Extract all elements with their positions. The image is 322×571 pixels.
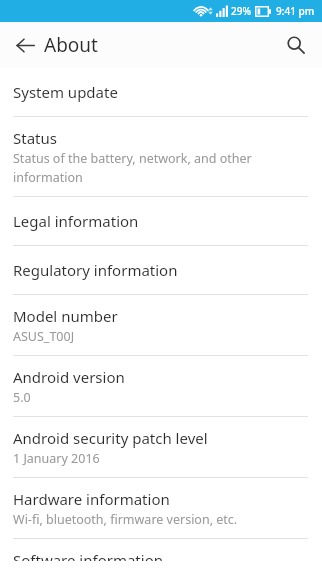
staticText: About bbox=[44, 32, 98, 58]
button[interactable]: Android version bbox=[0, 356, 322, 416]
staticText: Android security patch level bbox=[13, 428, 208, 448]
button[interactable]: Android security patch level bbox=[0, 417, 322, 477]
button[interactable]: Software information bbox=[0, 539, 322, 571]
staticText: 9:41 pm bbox=[276, 4, 315, 18]
staticText: Model number bbox=[13, 306, 118, 326]
button[interactable]: System update bbox=[0, 68, 322, 116]
staticText: Hardware information bbox=[13, 489, 170, 509]
button[interactable]: Hardware information bbox=[0, 478, 322, 538]
staticText: Status bbox=[13, 128, 57, 148]
staticText: Wi-fi, bluetooth, firmware version, etc. bbox=[13, 511, 238, 528]
button[interactable]: Search bbox=[278, 27, 314, 63]
staticText: Regulatory information bbox=[13, 260, 178, 280]
button[interactable]: Status bbox=[0, 117, 322, 196]
staticText: 1 January 2016 bbox=[13, 450, 100, 467]
staticText: Legal information bbox=[13, 211, 139, 231]
button[interactable]: Legal information bbox=[0, 197, 322, 245]
staticText: 29% bbox=[231, 4, 251, 18]
staticText: 5.0 bbox=[13, 389, 31, 406]
staticText: System update bbox=[13, 82, 118, 102]
staticText: information bbox=[13, 169, 83, 186]
button[interactable]: Regulatory information bbox=[0, 246, 322, 294]
button[interactable]: Back bbox=[8, 28, 42, 62]
staticText: Android version bbox=[13, 367, 125, 387]
staticText: Software information bbox=[13, 550, 163, 561]
staticText: ASUS_T00J bbox=[13, 328, 75, 345]
button[interactable]: Model number bbox=[0, 295, 322, 355]
staticText: Status of the battery, network, and othe… bbox=[13, 150, 252, 167]
